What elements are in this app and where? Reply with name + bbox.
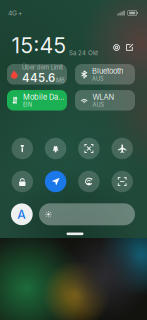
button[interactable]: Brightness — [39, 203, 135, 225]
staticText: EIN — [23, 101, 32, 108]
staticText: 445.6 — [22, 71, 55, 85]
staticText: Bluetooth — [92, 66, 123, 75]
staticText: AUS — [92, 75, 104, 82]
button[interactable]: Auto Brightness — [11, 203, 33, 225]
button[interactable]: Edit — [123, 41, 136, 54]
staticText: MB — [56, 77, 65, 84]
button[interactable]: Airplane Mode — [111, 138, 133, 159]
staticText: Über dem Limit — [22, 64, 63, 71]
button[interactable]: Rotation Lock — [78, 171, 100, 192]
staticText: A — [17, 207, 26, 221]
button[interactable]: Screenshot — [78, 138, 100, 159]
staticText: Sa 24 Okt — [69, 49, 98, 57]
button[interactable]: Mobile Da… — [7, 90, 67, 110]
button[interactable]: Bluetooth — [75, 64, 135, 84]
button[interactable]: Über dem Limit — [7, 64, 67, 84]
button[interactable]: Settings — [110, 41, 123, 54]
staticText: AUS — [92, 101, 104, 108]
button[interactable]: Do Not Disturb — [45, 138, 66, 159]
staticText: + — [18, 9, 22, 17]
button[interactable]: Lock — [12, 171, 33, 192]
staticText: 15:45 — [11, 33, 66, 58]
button[interactable]: Flashlight — [12, 138, 33, 159]
staticText: 4G — [8, 9, 17, 17]
staticText: Mobile Da… — [23, 92, 64, 101]
button[interactable]: Cast — [111, 171, 133, 192]
button[interactable]: WLAN — [75, 90, 135, 110]
button[interactable]: Location — [45, 171, 66, 192]
staticText: WLAN — [92, 92, 114, 101]
